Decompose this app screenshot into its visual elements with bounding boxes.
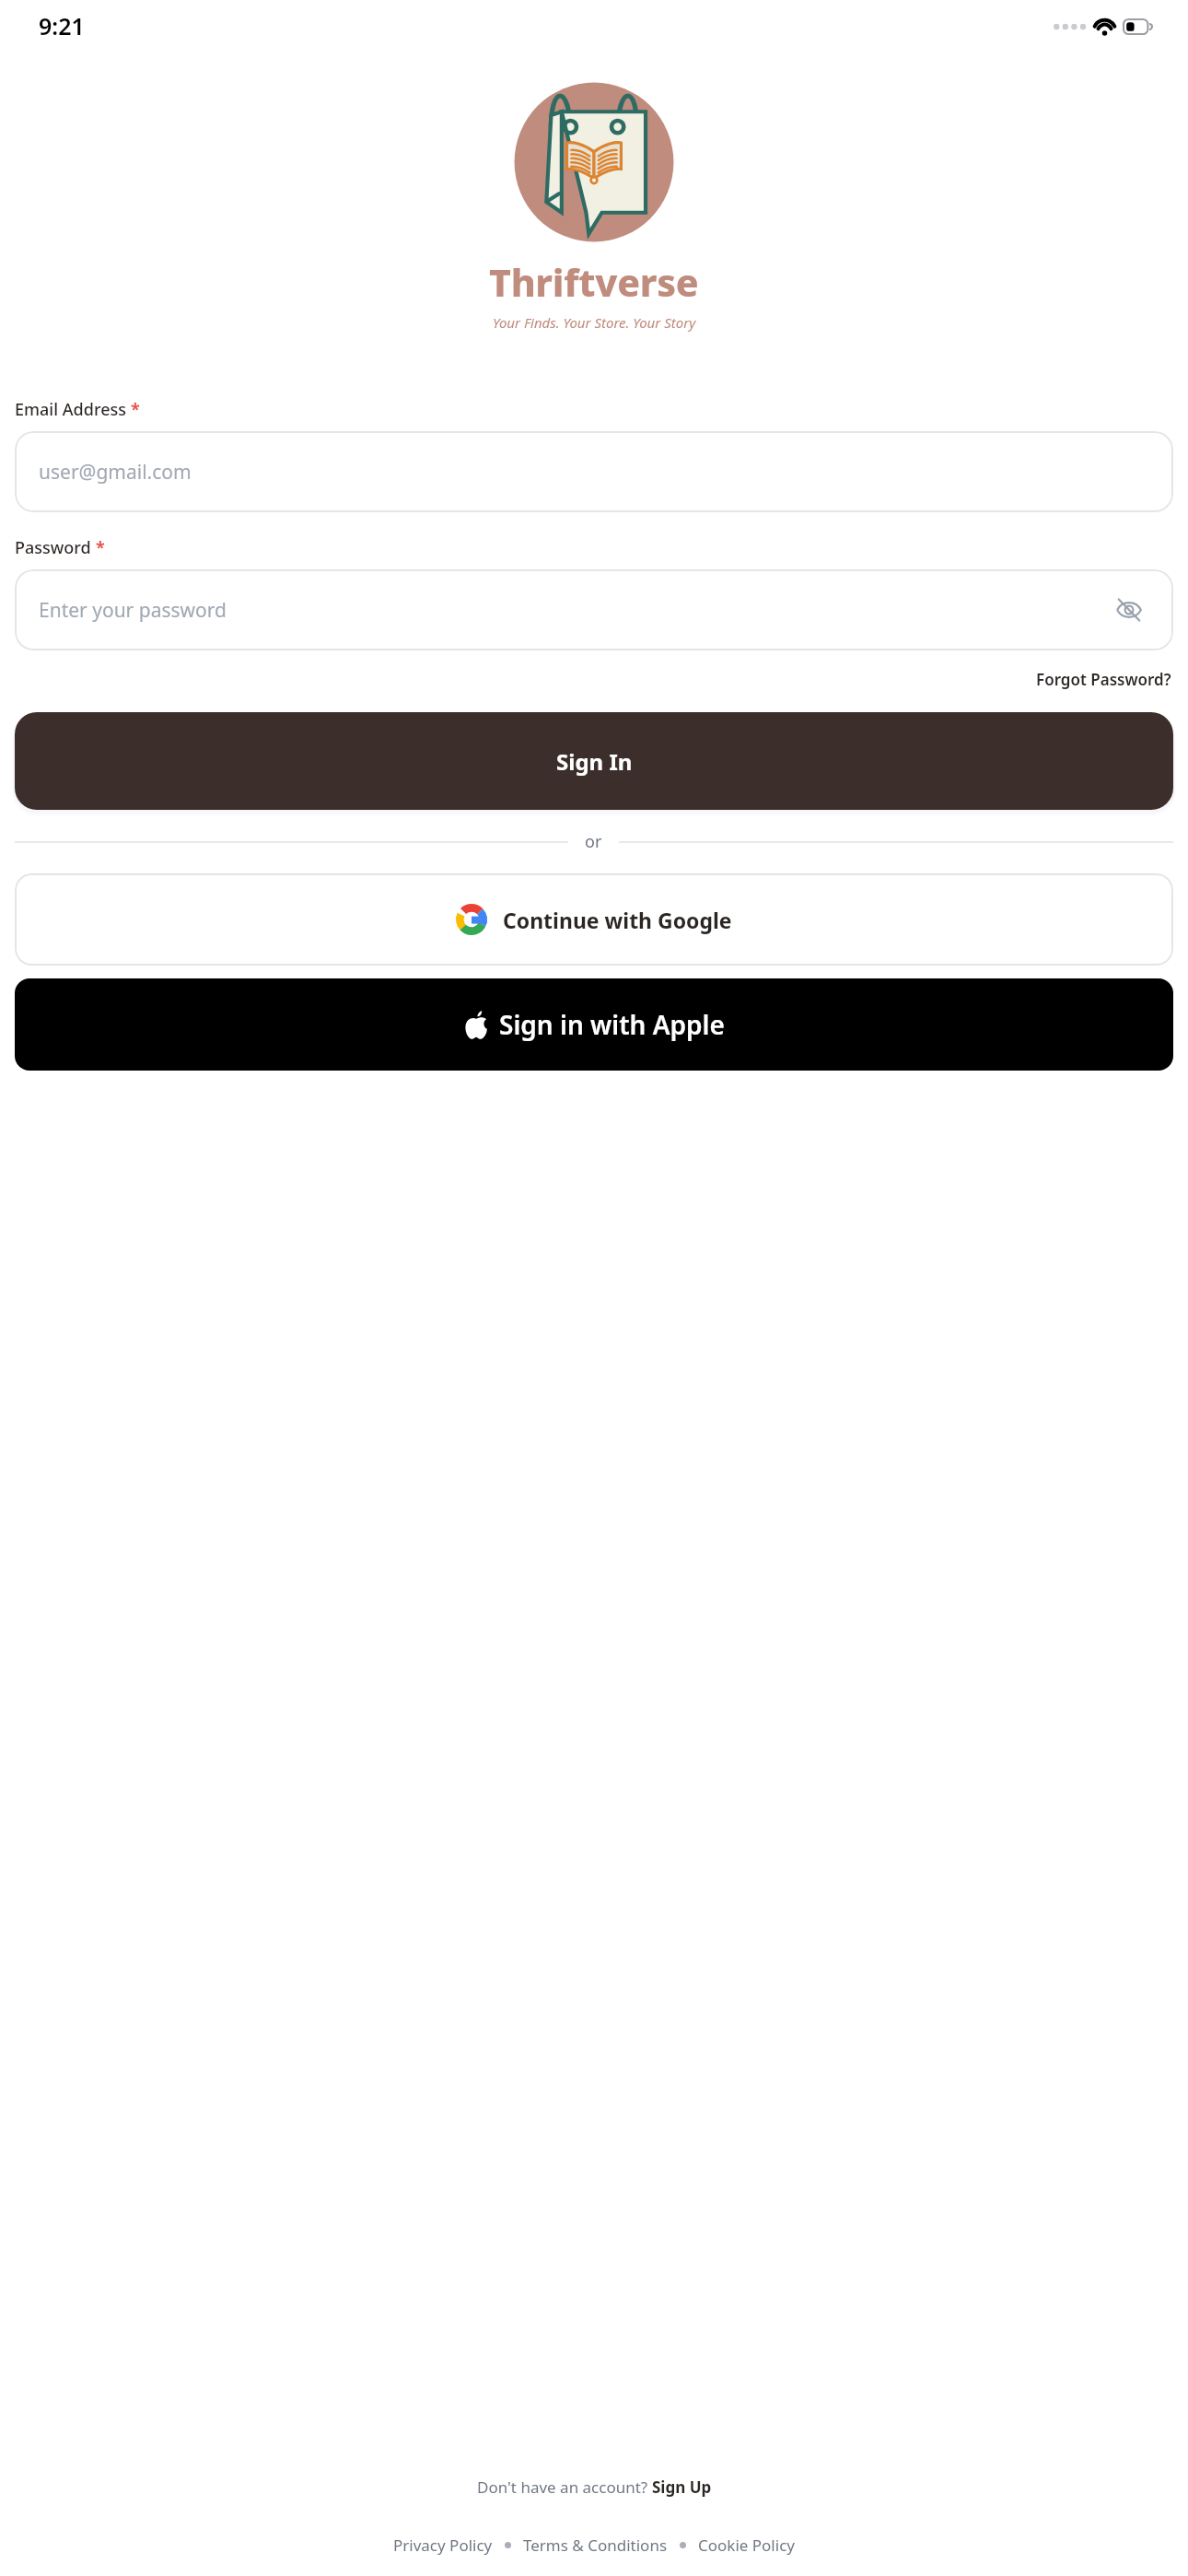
button[interactable]: Sign in with Apple xyxy=(15,978,1173,1071)
staticText: Email Address xyxy=(15,398,126,421)
staticText: Your Finds. Your Store. Your Story xyxy=(493,313,696,332)
staticText: * xyxy=(96,536,105,559)
staticText: Continue with Google xyxy=(503,906,732,934)
staticText: or xyxy=(585,830,602,853)
staticText: Cookie Policy xyxy=(698,2535,795,2556)
staticText: Sign Up xyxy=(652,2476,712,2498)
button[interactable]: Cookie Policy xyxy=(694,2531,798,2559)
staticText: Enter your password xyxy=(39,597,227,624)
staticText: Thriftverse xyxy=(489,256,699,308)
button[interactable]: Sign In xyxy=(15,712,1173,810)
staticText: Privacy Policy xyxy=(393,2535,493,2556)
staticText: Password xyxy=(15,536,91,559)
button[interactable]: Show password xyxy=(1109,590,1149,630)
staticText: Forgot Password? xyxy=(1036,669,1171,690)
staticText: 9:21 xyxy=(39,10,85,41)
button[interactable]: Privacy Policy xyxy=(390,2531,496,2559)
staticText: user@gmail.com xyxy=(39,459,192,486)
staticText: Sign in with Apple xyxy=(499,1007,725,1042)
staticText: Don't have an account? xyxy=(477,2476,652,2498)
button[interactable]: user@gmail.com xyxy=(15,431,1173,512)
staticText: Terms & Conditions xyxy=(523,2535,668,2556)
button[interactable]: Forgot Password? xyxy=(1034,665,1173,694)
button[interactable]: Enter your password xyxy=(15,569,1173,650)
staticText: * xyxy=(131,398,140,421)
button[interactable]: Continue with Google xyxy=(15,873,1173,966)
button[interactable]: Terms & Conditions xyxy=(519,2531,671,2559)
button[interactable]: Don't have an account? xyxy=(0,2473,1188,2501)
staticText: Sign In xyxy=(556,746,633,777)
